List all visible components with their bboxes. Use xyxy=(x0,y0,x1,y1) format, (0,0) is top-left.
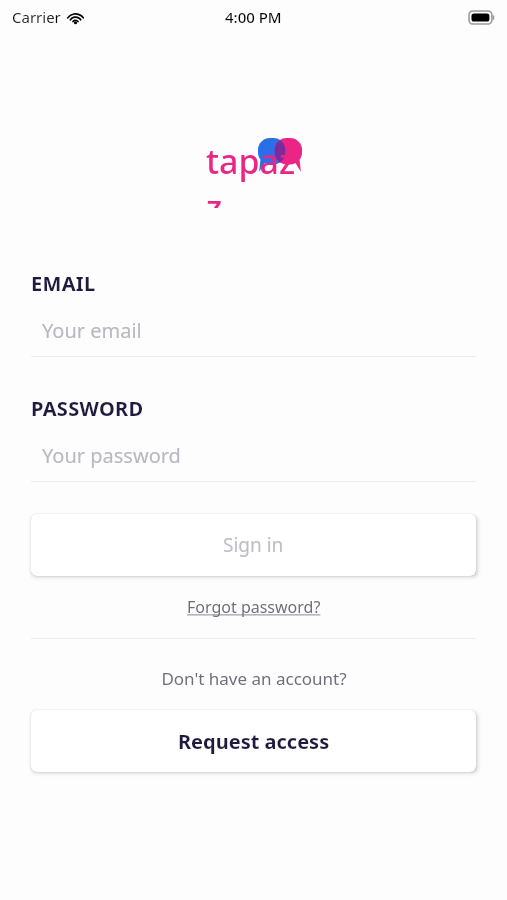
staticText: EMAIL xyxy=(31,270,96,297)
button[interactable]: Request access xyxy=(31,710,476,772)
button[interactable]: Your email xyxy=(31,317,476,357)
staticText: PASSWORD xyxy=(31,395,144,422)
button[interactable]: Sign in xyxy=(31,514,476,576)
staticText: Your password xyxy=(42,442,181,469)
button[interactable]: Forgot password? xyxy=(179,592,329,622)
staticText: Request access xyxy=(178,728,330,755)
staticText: Your email xyxy=(42,317,142,344)
button[interactable]: Your password xyxy=(31,442,476,482)
staticText: Forgot password? xyxy=(187,596,321,618)
staticText: Sign in xyxy=(223,532,284,558)
staticText: Carrier xyxy=(12,7,61,27)
staticText: Don't have an account? xyxy=(161,667,347,690)
staticText: 4:00 PM xyxy=(225,7,282,27)
staticText: tapazz xyxy=(206,138,302,208)
